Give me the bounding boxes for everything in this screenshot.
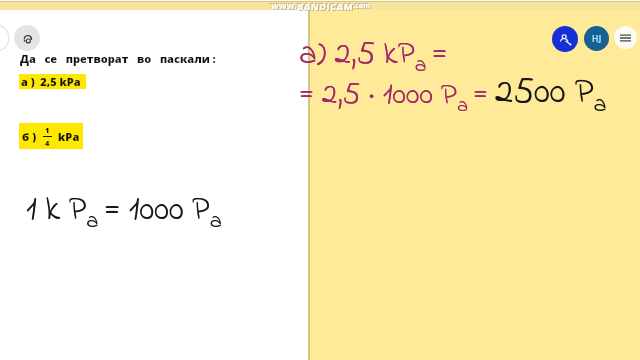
staticText: 2500 Pa	[495, 67, 604, 123]
staticText: .com	[354, 2, 372, 12]
button[interactable]: Add person	[552, 26, 578, 52]
staticText: б )	[22, 129, 37, 144]
staticText: www.	[272, 1, 298, 12]
staticText: www.	[270, 0, 296, 10]
staticText: .com	[352, 0, 370, 10]
staticText: Да се претворат во паскали :	[20, 51, 216, 66]
staticText: 4	[45, 138, 50, 148]
staticText: 1 k Pa = 1000 Pa	[26, 186, 219, 238]
staticText: а ) 2,5 kPa	[21, 74, 81, 89]
staticText: 1 k Pa = 1000 Pa	[26, 186, 219, 238]
staticText: = 2,5 · 1000 Pa =	[299, 73, 489, 121]
staticText: BANDICAM	[296, 0, 352, 10]
staticText: HJ	[592, 33, 602, 45]
staticText: BANDICAM	[297, 0, 353, 11]
staticText: a) 2,5 kPa =	[299, 31, 448, 81]
staticText: BANDICAM	[298, 1, 354, 12]
staticText: www.	[271, 0, 297, 11]
button[interactable]: Undo	[14, 25, 40, 51]
staticText: 2500 Pa	[495, 67, 604, 123]
staticText: kPa	[58, 129, 80, 144]
staticText: 1	[45, 125, 50, 135]
button[interactable]: Menu	[614, 26, 637, 49]
staticText: = 2,5 · 1000 Pa =	[299, 73, 489, 121]
button[interactable]: HJ	[584, 26, 609, 51]
staticText: .com	[353, 1, 371, 11]
staticText: a) 2,5 kPa =	[299, 31, 448, 81]
